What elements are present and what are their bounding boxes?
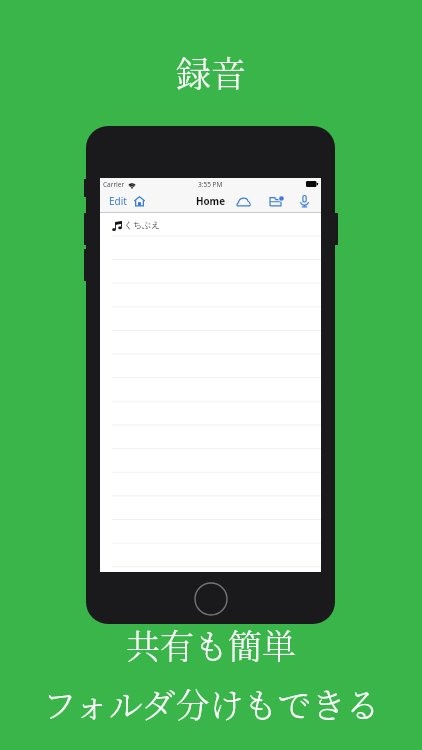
staticText: 録音 xyxy=(0,47,422,97)
staticText: くちぶえ xyxy=(124,220,161,231)
staticText: 共有も簡単 xyxy=(0,620,422,669)
staticText: Carrier xyxy=(103,180,125,189)
button[interactable]: Record xyxy=(294,190,315,212)
button[interactable]: Edit xyxy=(109,194,127,208)
button[interactable]: Cloud xyxy=(230,190,257,212)
staticText: Home xyxy=(196,195,226,208)
staticText: 3:55 PM xyxy=(198,180,223,189)
staticText: フォルダ分けもできる xyxy=(0,679,422,728)
button[interactable]: Home xyxy=(134,196,145,207)
button[interactable]: New folder xyxy=(263,190,289,212)
button[interactable]: くちぶえ xyxy=(100,213,321,237)
